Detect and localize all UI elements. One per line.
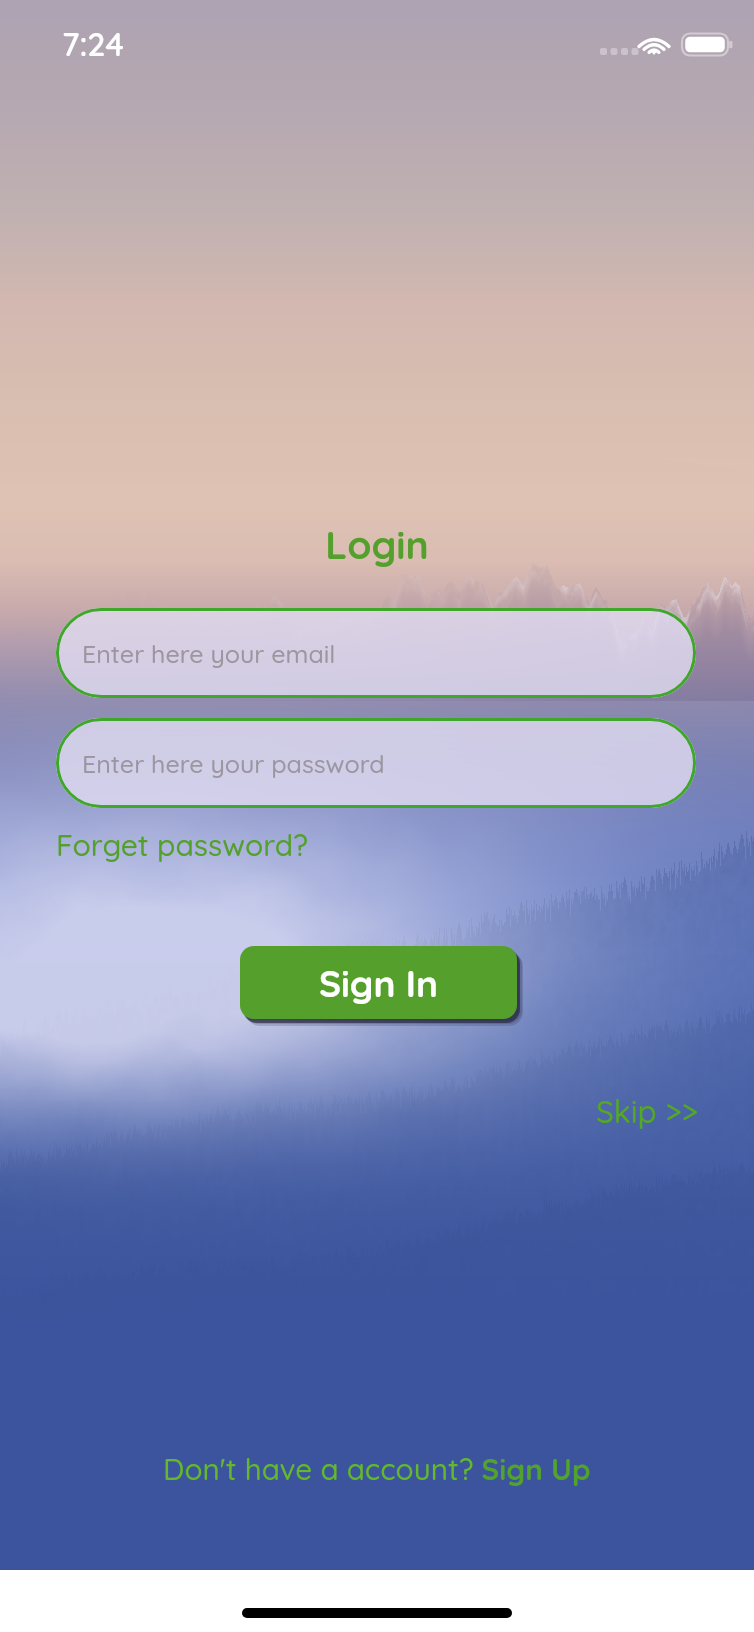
staticText: Sign In	[319, 960, 439, 1006]
staticText: Don't have a account? Sign Up	[163, 1450, 591, 1487]
staticText: Enter here your password	[82, 748, 385, 779]
staticText: Login	[0, 520, 754, 569]
staticText: 7:24	[62, 24, 124, 65]
staticText: Skip >>	[596, 1092, 698, 1131]
staticText: Enter here your email	[82, 638, 336, 669]
other: Status icons	[598, 31, 738, 57]
button[interactable]: Enter here your email	[56, 608, 696, 698]
button[interactable]: Skip >>	[588, 1088, 706, 1135]
button[interactable]: Don't have a account? Sign Up	[155, 1446, 599, 1491]
button[interactable]: Sign In	[240, 946, 517, 1019]
button[interactable]: Forget password?	[48, 822, 317, 868]
button[interactable]: Enter here your password	[56, 718, 696, 808]
staticText: Forget password?	[56, 826, 309, 864]
